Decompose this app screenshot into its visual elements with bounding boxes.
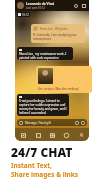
staticText: Hi Leonardo, I am studying your masterpi… — [33, 33, 77, 41]
button[interactable]: Mona Lisa , my renaissance work. I paint… — [17, 47, 73, 60]
staticText: Last seen 10:12 — [26, 6, 45, 10]
button[interactable]: Chats — [32, 129, 44, 141]
staticText: Share images & links — [11, 170, 79, 179]
button[interactable]: Leonardo da Vinci — [15, 0, 89, 11]
staticText: 24/7 CHAT — [11, 144, 73, 160]
staticText: I'm curious. Was she smiling! — [38, 87, 79, 91]
button[interactable]: More options — [80, 2, 88, 10]
staticText: Instant Text, — [11, 161, 52, 170]
button[interactable]: Message / Send gift — [19, 119, 85, 126]
button[interactable]: Trust your feelings. I aimed to capture … — [17, 94, 69, 116]
button[interactable]: Mona Lisa - Wikipedia — [31, 24, 85, 43]
button[interactable]: Search — [72, 2, 80, 10]
staticText: 10:12 — [22, 13, 29, 17]
staticText: Mona Lisa , my renaissance work. I paint… — [19, 52, 67, 60]
button[interactable]: Moments — [60, 129, 72, 141]
button[interactable]: 10:12 — [18, 12, 29, 17]
staticText: Leonardo da Vinci — [26, 2, 55, 6]
button[interactable]: Discover — [46, 129, 58, 141]
button[interactable]: I'm curious. Was she smiling! — [36, 66, 92, 93]
button[interactable]: Profile — [75, 129, 87, 141]
staticText: Trust your feelings. I aimed to capture … — [19, 99, 67, 115]
button[interactable]: Camera — [17, 129, 29, 141]
staticText: Message / Send gift — [25, 121, 51, 125]
staticText: Mona Lisa - Wikipedia — [40, 27, 68, 31]
